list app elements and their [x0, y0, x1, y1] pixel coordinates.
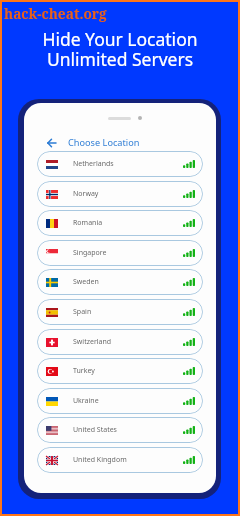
button[interactable]: Netherlands: [37, 151, 203, 177]
button[interactable]: Back: [47, 134, 140, 151]
button[interactable]: Sweden: [37, 269, 203, 295]
button[interactable]: Spain: [37, 299, 203, 325]
button[interactable]: United States: [37, 417, 203, 443]
staticText: United Kingdom: [73, 455, 127, 465]
staticText: Choose Location: [68, 136, 140, 149]
staticText: Singapore: [73, 248, 107, 258]
button[interactable]: Singapore: [37, 240, 203, 266]
staticText: Switzerland: [73, 337, 112, 347]
staticText: hack-cheat.org: [4, 4, 107, 23]
button[interactable]: Switzerland: [37, 329, 203, 355]
button[interactable]: Ukraine: [37, 388, 203, 414]
staticText: Hide Your Location Unlimited Servers: [0, 27, 240, 71]
staticText: United States: [73, 425, 117, 435]
button[interactable]: United Kingdom: [37, 447, 203, 473]
staticText: Norway: [73, 189, 99, 199]
button[interactable]: Norway: [37, 181, 203, 207]
staticText: Ukraine: [73, 396, 99, 406]
staticText: Sweden: [73, 277, 99, 287]
staticText: Netherlands: [73, 159, 114, 169]
button[interactable]: Romania: [37, 210, 203, 236]
staticText: Turkey: [73, 366, 95, 376]
staticText: Romania: [73, 218, 103, 228]
other: Back: [47, 139, 56, 147]
button[interactable]: Turkey: [37, 358, 203, 384]
staticText: Spain: [73, 307, 92, 317]
